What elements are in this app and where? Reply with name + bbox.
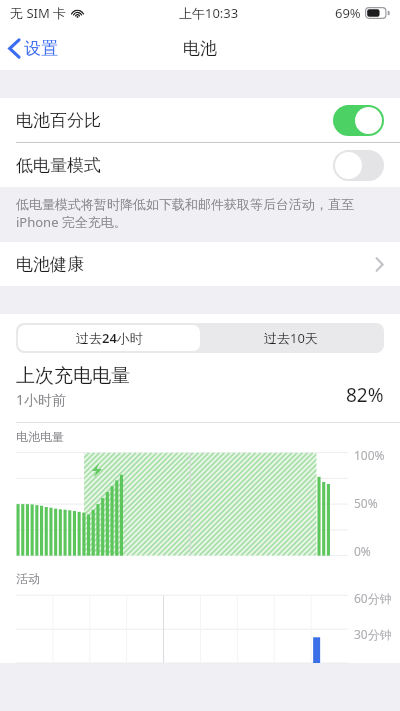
- staticText: 活动: [16, 571, 40, 586]
- button[interactable]: 过去10天: [200, 325, 382, 351]
- button[interactable]: 过去24小时: [18, 325, 200, 351]
- staticText: 过去10天: [264, 329, 318, 347]
- staticText: 60分钟: [354, 590, 392, 606]
- staticText: 0%: [354, 543, 371, 559]
- staticText: 低电量模式将暂时降低如下载和邮件获取等后台活动，直至 iPhone 完全充电。: [16, 195, 376, 231]
- button[interactable]: 已开启: [333, 105, 384, 136]
- button[interactable]: 已关闭: [333, 150, 384, 181]
- staticText: 82%: [346, 382, 384, 408]
- button[interactable]: 设置: [0, 32, 70, 65]
- staticText: 上午10:33: [179, 4, 239, 22]
- staticText: 69%: [335, 4, 361, 22]
- staticText: 低电量模式: [16, 155, 101, 176]
- staticText: 50%: [354, 495, 378, 511]
- staticText: 设置: [24, 38, 58, 59]
- staticText: 无 SIM 卡: [10, 4, 67, 22]
- staticText: 100%: [354, 447, 385, 463]
- button[interactable]: 低电量模式: [0, 143, 400, 187]
- staticText: 30分钟: [354, 626, 392, 642]
- staticText: 电池百分比: [16, 110, 101, 131]
- staticText: 上次充电电量: [16, 364, 130, 388]
- button[interactable]: 电池健康: [0, 242, 400, 286]
- staticText: 电池电量: [16, 429, 64, 444]
- staticText: 电池健康: [16, 254, 84, 275]
- staticText: 电池: [183, 38, 217, 59]
- staticText: 1小时前: [16, 390, 67, 409]
- button[interactable]: 电池百分比: [0, 98, 400, 142]
- staticText: 过去24小时: [76, 329, 143, 347]
